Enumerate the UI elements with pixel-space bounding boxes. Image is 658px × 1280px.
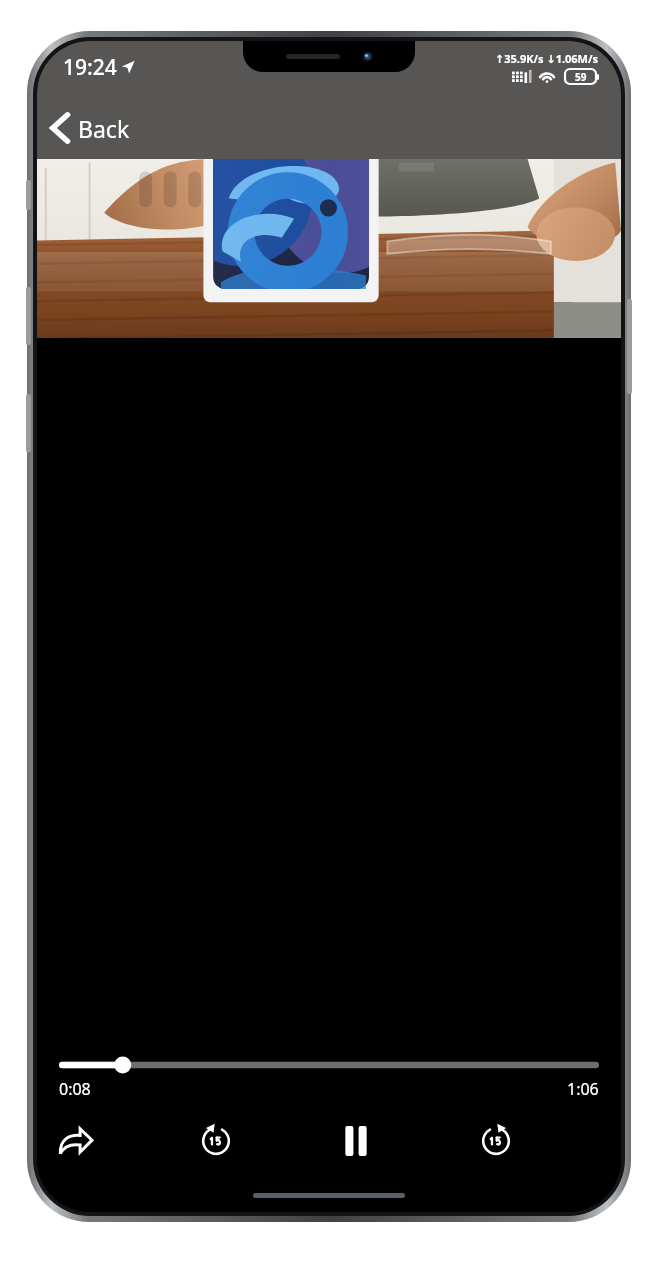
staticText: ↑35.9K/s ↓1.06M/s (495, 51, 599, 66)
staticText: 1:06 (567, 1078, 599, 1100)
button[interactable]: Forward 15 seconds (469, 1114, 523, 1168)
staticText: 0:08 (59, 1078, 91, 1100)
button[interactable]: Back (37, 97, 148, 159)
staticText: Back (78, 113, 130, 144)
button[interactable]: Share (49, 1114, 103, 1168)
button[interactable]: Rewind 15 seconds (189, 1114, 243, 1168)
button[interactable]: Pause (329, 1114, 383, 1168)
button[interactable]: Seek bar (59, 1052, 599, 1078)
staticText: 59 (575, 70, 587, 84)
staticText: 19:24 (63, 53, 117, 82)
